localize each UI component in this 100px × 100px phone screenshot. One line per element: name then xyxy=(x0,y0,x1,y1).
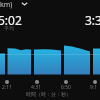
staticText: 平均 xyxy=(4,25,14,31)
staticText: 4:31 xyxy=(31,84,41,91)
staticText: 時間（時：分：秒） xyxy=(26,91,71,97)
staticText: km) xyxy=(0,0,13,10)
button[interactable]: Change metric xyxy=(19,0,29,8)
staticText: 2:11 xyxy=(2,84,12,91)
staticText: 6:50 xyxy=(61,84,71,91)
staticText: 9:1 xyxy=(90,84,98,91)
staticText: 5:02 xyxy=(0,12,22,28)
staticText: 3:3 xyxy=(85,12,100,28)
